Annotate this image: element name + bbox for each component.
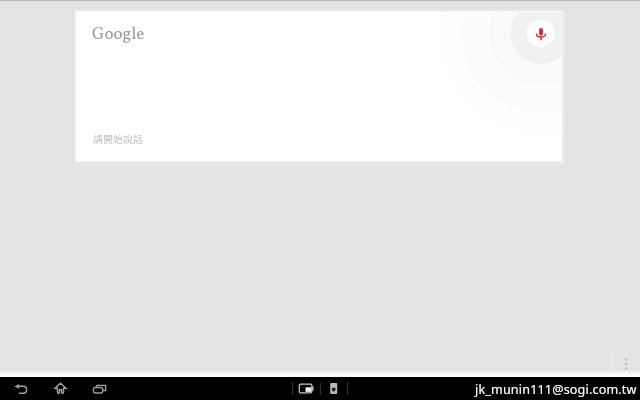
button[interactable]: Google: [76, 12, 562, 161]
staticText: 請開始說話: [93, 131, 143, 145]
button[interactable]: Recent apps: [85, 377, 113, 400]
button[interactable]: Back: [6, 377, 34, 400]
button[interactable]: Voice search: [527, 20, 555, 48]
button[interactable]: Home: [46, 377, 74, 400]
button[interactable]: More options: [614, 352, 638, 376]
staticText: Google: [92, 23, 145, 47]
staticText: jk_munin111@sogi.com.tw: [475, 381, 637, 398]
